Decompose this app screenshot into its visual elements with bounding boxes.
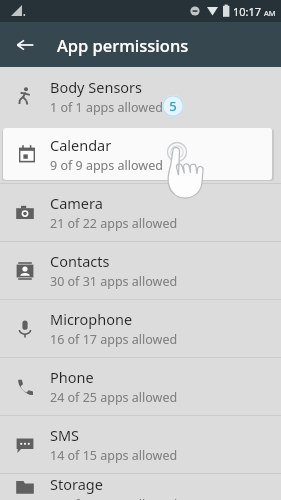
staticText: 16 of 17 apps allowed	[50, 331, 178, 348]
staticText: 5	[169, 97, 177, 115]
staticText: Phone	[50, 367, 94, 387]
staticText: Microphone	[50, 309, 133, 329]
button[interactable]: Storage	[0, 474, 281, 500]
staticText: SMS	[50, 425, 80, 445]
staticText: 1 of 1 apps allowed	[50, 99, 163, 116]
button[interactable]: Microphone	[0, 300, 281, 357]
staticText: 27 of 28 apps allowed	[50, 496, 178, 500]
staticText: 14 of 15 apps allowed	[50, 447, 178, 464]
staticText: Contacts	[50, 251, 110, 271]
staticText: Storage	[50, 474, 103, 494]
staticText: Calendar	[50, 135, 112, 155]
staticText: Camera	[50, 193, 103, 213]
button[interactable]: Body Sensors	[0, 67, 281, 125]
staticText: App permissions	[57, 34, 189, 56]
button[interactable]: Calendar	[3, 128, 272, 180]
staticText: 10:17	[233, 4, 262, 19]
staticText: 9 of 9 apps allowed	[50, 157, 163, 174]
button[interactable]: Back	[8, 28, 42, 62]
staticText: AM	[264, 8, 276, 18]
staticText: Body Sensors	[50, 77, 143, 97]
staticText: 24 of 25 apps allowed	[50, 389, 178, 406]
staticText: 21 of 22 apps allowed	[50, 215, 178, 232]
button[interactable]: Phone	[0, 358, 281, 415]
button[interactable]: SMS	[0, 416, 281, 473]
button[interactable]: Camera	[0, 184, 281, 241]
button[interactable]: Contacts	[0, 242, 281, 299]
staticText: 30 of 31 apps allowed	[50, 273, 178, 290]
